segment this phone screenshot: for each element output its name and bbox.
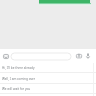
button[interactable]: Hi, I'll be there already xyxy=(0,62,96,73)
button[interactable]: Camera xyxy=(74,51,83,60)
staticText: Hi, I'll be there already xyxy=(2,66,35,70)
staticText: Well, I am coming over xyxy=(2,77,36,81)
button[interactable]: We will wait for you xyxy=(0,83,96,94)
button[interactable]: Voice message xyxy=(83,51,92,60)
button[interactable]: Well, I am coming over xyxy=(0,73,96,84)
button[interactable] xyxy=(11,53,71,60)
staticText: We will wait for you xyxy=(2,87,31,91)
button[interactable]: Emoji xyxy=(1,51,11,61)
